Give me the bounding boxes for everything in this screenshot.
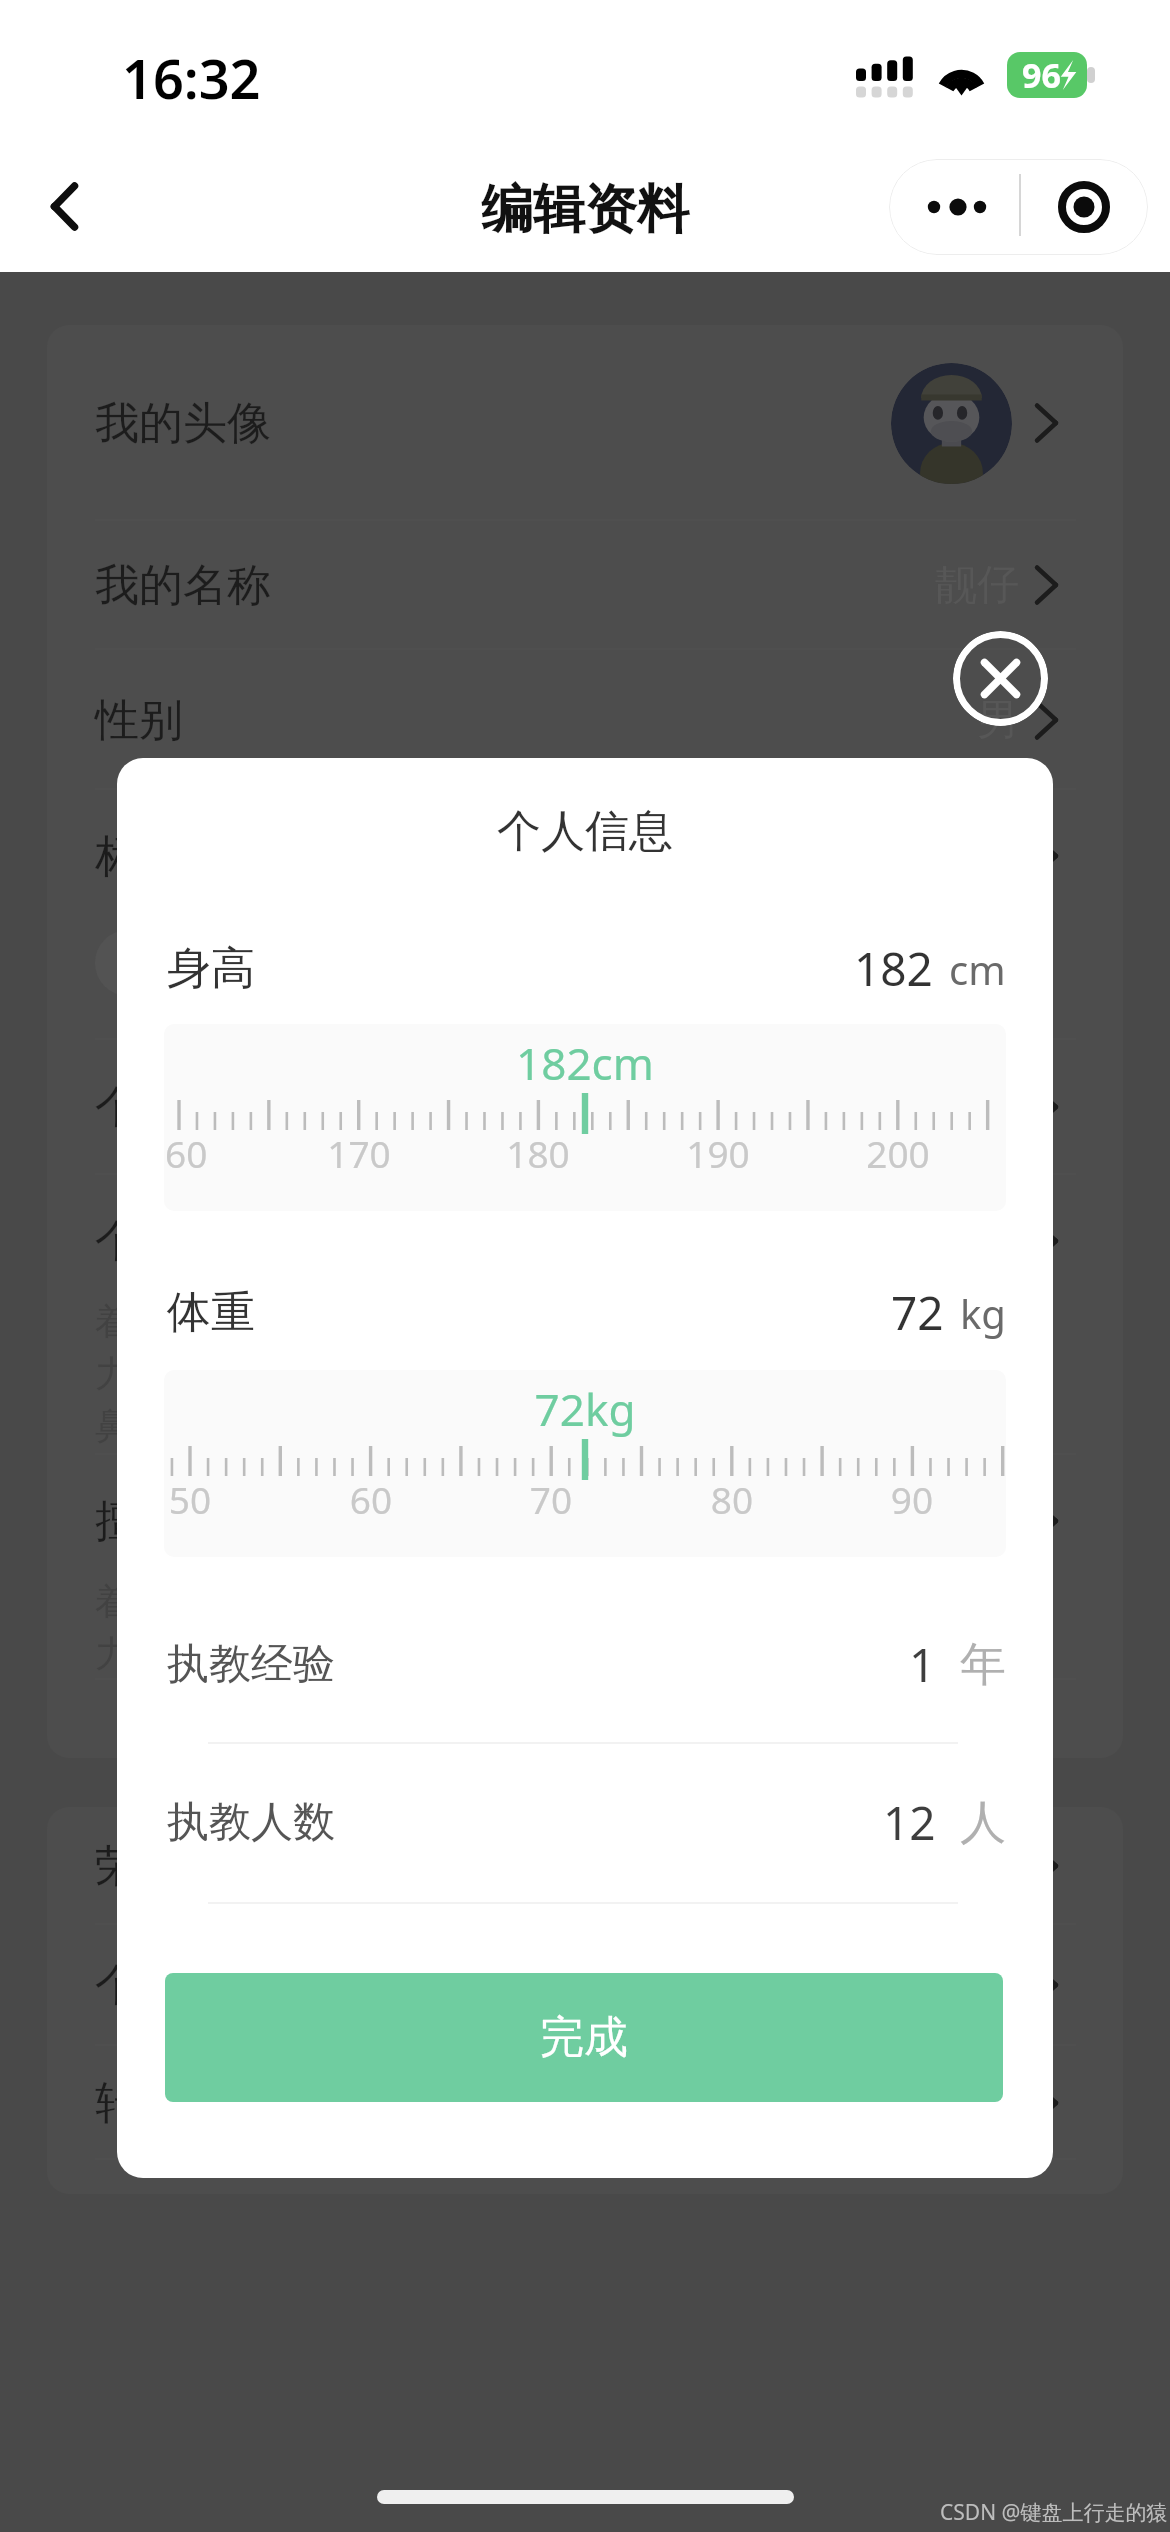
- staticText: 体重: [167, 1285, 255, 1340]
- staticText: 50: [164, 1474, 250, 1524]
- button[interactable]: 完成: [165, 1973, 1003, 2102]
- staticText: 个人照片: [95, 1958, 271, 2013]
- staticText: 荣誉: [95, 1839, 183, 1894]
- staticText: 16:32: [122, 41, 261, 115]
- staticText: 力量训练、体态矫正、康复训练、运动营养规划指导: [95, 1351, 923, 1396]
- button[interactable]: 荣誉: [47, 1807, 1123, 1925]
- staticText: 170: [299, 1128, 419, 1178]
- staticText: 我的头像: [95, 396, 271, 451]
- staticText: 12: [883, 1791, 936, 1854]
- staticText: 我的名称: [95, 558, 271, 613]
- staticText: kg: [960, 1286, 1006, 1340]
- staticText: 着力于青少年体能训练与运动康复，累计服务超过百名学员: [95, 1299, 1031, 1344]
- staticText: 72: [891, 1281, 944, 1344]
- staticText: 性别: [95, 693, 183, 748]
- staticText: 身高: [167, 941, 255, 996]
- staticText: 个人介绍: [95, 1214, 271, 1269]
- staticText: 擅长领域: [95, 1494, 271, 1549]
- staticText: 96: [1022, 52, 1061, 98]
- staticText: 1: [909, 1633, 936, 1696]
- staticText: 标签: [95, 829, 183, 884]
- staticText: 70: [491, 1474, 611, 1524]
- staticText: 60: [165, 1128, 285, 1178]
- button[interactable]: 擅长领域: [47, 1455, 1123, 1680]
- button[interactable]: 我的头像: [47, 325, 1123, 521]
- staticText: 执教人数: [167, 1796, 335, 1849]
- staticText: 着力于青少年体能训练与运动康复，累计服务超过百名学员: [95, 1579, 1031, 1624]
- staticText: 72kg: [164, 1379, 1006, 1439]
- button[interactable]: More options: [889, 159, 1020, 255]
- staticText: 个人信息: [117, 804, 1053, 859]
- staticText: 力量训练、体态矫正、康复训练、运动营养规划指导: [95, 1631, 923, 1676]
- staticText: 90: [852, 1474, 972, 1524]
- staticText: 182: [854, 937, 933, 1000]
- staticText: 完成: [540, 2010, 628, 2065]
- button[interactable]: 个性签名: [47, 1040, 1123, 1175]
- staticText: 编辑资料: [0, 177, 1170, 243]
- staticText: 年: [960, 1636, 1006, 1694]
- staticText: 个性签名: [95, 1080, 271, 1135]
- staticText: 靓仔: [935, 559, 1019, 612]
- button[interactable]: 标签: [47, 790, 1123, 1040]
- staticText: CSDN @键盘上行走的猿: [940, 2498, 1168, 2527]
- button[interactable]: 转账记录: [47, 2046, 1123, 2160]
- staticText: 转账记录: [95, 2076, 271, 2131]
- staticText: 60: [311, 1474, 431, 1524]
- staticText: 男: [977, 694, 1019, 747]
- button[interactable]: 个人照片: [47, 1925, 1123, 2046]
- button[interactable]: Mini program home: [1020, 159, 1148, 255]
- staticText: 人: [960, 1794, 1006, 1852]
- staticText: 190: [658, 1128, 778, 1178]
- button[interactable]: 性别: [47, 650, 1123, 790]
- staticText: 80: [672, 1474, 792, 1524]
- staticText: 182cm: [164, 1033, 1006, 1093]
- staticText: cm: [949, 942, 1006, 996]
- button[interactable]: [47, 2160, 1123, 2194]
- button[interactable]: Back: [16, 154, 114, 252]
- staticText: 180: [478, 1128, 598, 1178]
- staticText: 200: [838, 1128, 958, 1178]
- button[interactable]: 个人介绍: [47, 1175, 1123, 1455]
- staticText: 执教经验: [167, 1638, 335, 1691]
- staticText: 鼻梁骨折康复、核心稳定训练: [95, 1403, 563, 1448]
- button[interactable]: [47, 1680, 1123, 1758]
- button[interactable]: 我的名称: [47, 521, 1123, 650]
- button[interactable]: Close: [953, 631, 1048, 726]
